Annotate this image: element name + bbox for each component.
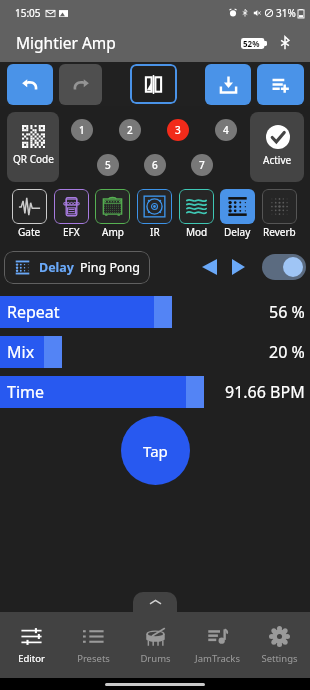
staticText: Active (263, 153, 292, 167)
staticText: 52% (243, 38, 260, 49)
staticText: JamTracks (195, 652, 240, 665)
button[interactable]: Enable effect (262, 254, 306, 280)
button[interactable]: Amp (95, 189, 130, 239)
staticText: Reverb (263, 225, 296, 239)
button[interactable]: 3 (167, 119, 189, 141)
staticText: 91.66 BPM (225, 381, 305, 403)
button[interactable]: Tap (121, 416, 190, 485)
staticText: 56 % (269, 301, 305, 323)
button[interactable]: Editor (0, 612, 62, 678)
button[interactable]: Gate (12, 189, 47, 239)
staticText: Gate (18, 225, 41, 239)
button[interactable]: IR (137, 189, 172, 239)
staticText: Time (7, 381, 45, 403)
staticText: EFX (63, 225, 80, 239)
staticText: 1 (79, 123, 85, 137)
staticText: Delay (224, 225, 251, 239)
staticText: QR Code (13, 152, 54, 166)
button[interactable]: Expand panel (133, 592, 177, 613)
staticText: Drums (140, 652, 171, 665)
button[interactable]: 4 (215, 119, 237, 141)
button[interactable]: 2 (119, 119, 141, 141)
staticText: Tap (143, 441, 168, 461)
button[interactable]: QR Code (7, 112, 59, 182)
button[interactable]: JamTracks (186, 612, 248, 678)
staticText: Amp (102, 225, 124, 239)
staticText: 15:05 (15, 6, 41, 20)
button[interactable]: Save preset (205, 64, 251, 105)
button[interactable]: 7 (191, 154, 213, 176)
staticText: 5 (105, 158, 111, 172)
button[interactable]: Add to list (257, 64, 304, 105)
button[interactable]: Next preset (224, 253, 252, 281)
button[interactable]: Presets (62, 612, 124, 678)
staticText: Ping Pong (80, 259, 140, 276)
button[interactable]: Previous preset (195, 253, 223, 281)
staticText: IR (150, 225, 160, 239)
staticText: 7 (199, 158, 205, 172)
staticText: Settings (261, 652, 298, 665)
staticText: 31% (276, 6, 296, 20)
button[interactable]: 5 (97, 154, 119, 176)
button[interactable]: Undo (7, 64, 53, 105)
button[interactable]: Settings (248, 612, 310, 678)
button[interactable]: Delay (14, 251, 140, 284)
staticText: Presets (77, 652, 110, 665)
staticText: 4 (223, 123, 229, 137)
staticText: 6 (152, 158, 158, 172)
button[interactable]: EFX (54, 189, 89, 239)
staticText: Mod (186, 225, 208, 239)
button[interactable]: Reverb (262, 189, 297, 239)
button[interactable]: 1 (71, 119, 93, 141)
button[interactable]: Drums (124, 612, 186, 678)
button[interactable]: Mod (179, 189, 214, 239)
staticText: Mightier Amp (16, 32, 116, 53)
staticText: 20 % (269, 341, 305, 363)
staticText: Mix (7, 341, 35, 363)
staticText: Delay (39, 259, 74, 276)
button[interactable]: 6 (144, 154, 166, 176)
button[interactable]: Delay (220, 189, 255, 239)
staticText: 2 (127, 123, 133, 137)
staticText: Repeat (7, 301, 60, 323)
button[interactable]: Compare (130, 64, 177, 104)
staticText: 3 (175, 123, 181, 137)
button[interactable]: Active (250, 112, 304, 182)
button[interactable]: Redo (59, 64, 102, 105)
staticText: Editor (18, 652, 45, 665)
